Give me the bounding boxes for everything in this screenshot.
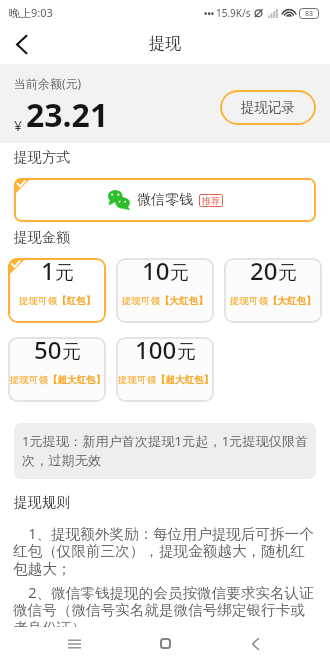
staticText: 提现可领 bbox=[19, 295, 57, 307]
staticText: 推荐 bbox=[202, 195, 220, 206]
staticText: 15.9K/s bbox=[216, 6, 251, 20]
button[interactable]: Home bbox=[149, 627, 182, 660]
staticText: 提现金额 bbox=[14, 229, 70, 247]
staticText: ••• bbox=[204, 7, 215, 19]
staticText: 10 bbox=[142, 258, 170, 287]
staticText: 提现可领 bbox=[118, 374, 156, 386]
staticText: 提现记录 bbox=[241, 99, 295, 116]
staticText: 提现可领 bbox=[122, 295, 160, 307]
staticText: 当前余额(元) bbox=[14, 75, 82, 91]
button[interactable]: 微信零钱 bbox=[14, 178, 316, 222]
staticText: 【大红包】 bbox=[160, 295, 208, 307]
staticText: 元 bbox=[170, 261, 189, 285]
staticText: 晚上9:03 bbox=[9, 5, 53, 20]
staticText: 83 bbox=[305, 9, 314, 19]
staticText: 【大红包】 bbox=[268, 295, 316, 307]
staticText: 元 bbox=[278, 261, 297, 285]
staticText: 100 bbox=[135, 337, 177, 366]
staticText: 20 bbox=[250, 258, 278, 287]
button[interactable]: Back bbox=[239, 627, 272, 660]
staticText: 23.21 bbox=[26, 93, 109, 137]
staticText: 元 bbox=[55, 261, 74, 285]
staticText: 1元提现：新用户首次提现1元起，1元提现仅限首次，过期无效 bbox=[22, 432, 315, 469]
staticText: 提现可领 bbox=[10, 374, 48, 386]
staticText: ¥ bbox=[14, 116, 23, 135]
button[interactable]: 20 bbox=[224, 258, 322, 323]
button[interactable]: 1 bbox=[8, 258, 106, 323]
staticText: 提现方式 bbox=[14, 149, 70, 167]
staticText: 元 bbox=[62, 340, 81, 364]
staticText: 1 bbox=[41, 258, 55, 287]
button[interactable]: Back bbox=[0, 25, 42, 64]
staticText: 【超大红包】 bbox=[48, 374, 105, 386]
button[interactable]: 100 bbox=[116, 337, 214, 402]
staticText: 【红包】 bbox=[57, 295, 95, 307]
staticText: 微信零钱 bbox=[137, 191, 193, 209]
button[interactable]: 10 bbox=[116, 258, 214, 323]
button[interactable]: Recent apps bbox=[58, 627, 91, 660]
staticText: 提现可领 bbox=[230, 295, 268, 307]
staticText: 2、微信零钱提现的会员按微信要求实名认证微信号（微信号实名就是微信号绑定银行卡或… bbox=[13, 582, 317, 638]
staticText: 元 bbox=[177, 340, 196, 364]
staticText: 1、提现额外奖励：每位用户提现后可拆一个红包（仅限前三次），提现金额越大，随机红… bbox=[13, 523, 317, 579]
button[interactable]: 50 bbox=[8, 337, 106, 402]
staticText: 50 bbox=[34, 337, 62, 366]
staticText: 提现 bbox=[149, 34, 181, 54]
button[interactable]: 提现记录 bbox=[220, 90, 316, 125]
staticText: 提现规则 bbox=[14, 494, 70, 512]
staticText: 【超大红包】 bbox=[156, 374, 213, 386]
